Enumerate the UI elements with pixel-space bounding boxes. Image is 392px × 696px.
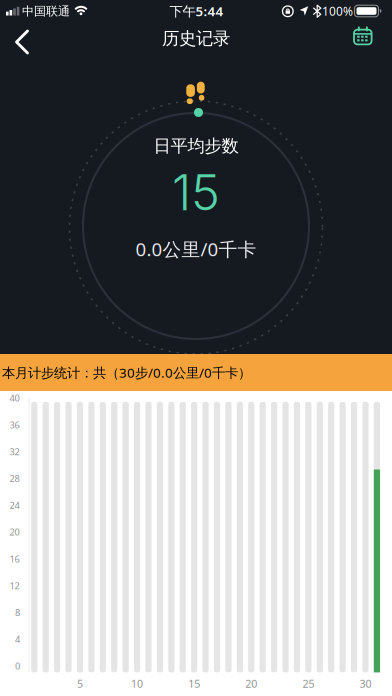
staticText: 16 [9, 553, 19, 565]
button[interactable]: Calendar [341, 24, 385, 62]
staticText: 100% [322, 3, 353, 19]
staticText: 28 [9, 472, 19, 485]
staticText: 5 [77, 676, 83, 691]
staticText: 8 [15, 606, 20, 619]
staticText: 30 [359, 676, 371, 691]
staticText: 15 [188, 676, 200, 691]
staticText: 25 [302, 676, 314, 691]
staticText: 40 [9, 392, 19, 404]
staticText: 24 [9, 499, 19, 511]
staticText: 15 [172, 163, 220, 222]
button[interactable]: Back [0, 24, 44, 62]
staticText: 12 [9, 579, 19, 592]
staticText: 0 [15, 660, 20, 672]
staticText: 中国联通 [22, 4, 70, 18]
staticText: 20 [9, 526, 19, 538]
staticText: 20 [245, 676, 257, 691]
staticText: 下午5:44 [169, 2, 223, 20]
staticText: 历史记录 [162, 28, 230, 49]
staticText: 4 [15, 633, 20, 645]
staticText: 日平均步数 [153, 135, 238, 157]
staticText: 0.0公里/0千卡 [135, 237, 256, 261]
staticText: 36 [9, 419, 19, 431]
staticText: 10 [131, 676, 143, 691]
staticText: 本月计步统计：共（30步/0.0公里/0千卡） [2, 364, 251, 381]
staticText: 32 [9, 445, 19, 458]
